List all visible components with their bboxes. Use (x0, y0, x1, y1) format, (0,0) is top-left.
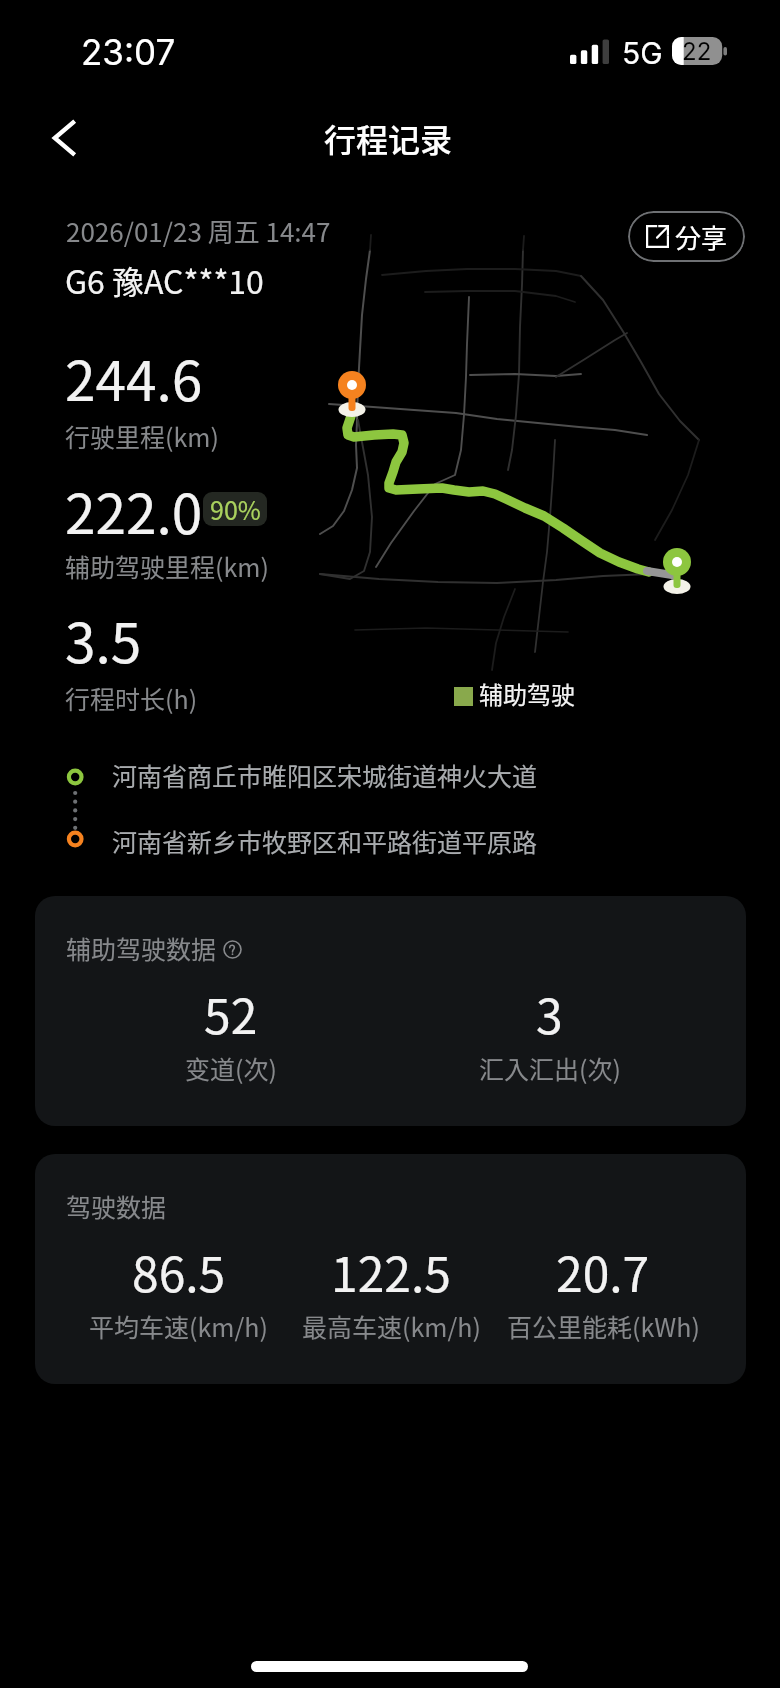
button[interactable]: Back (30, 105, 96, 171)
staticText: 行驶里程(km) (65, 418, 219, 454)
staticText: 3 (536, 978, 563, 1048)
staticText: 变道(次) (185, 1050, 277, 1086)
staticText: 122.5 (331, 1236, 451, 1306)
staticText: 驾驶数据 (66, 1188, 167, 1224)
staticText: 2026/01/23 周五 14:47 (66, 212, 331, 250)
staticText: 行程时长(h) (65, 680, 198, 716)
button[interactable]: 分享 (628, 211, 745, 262)
staticText: 86.5 (132, 1236, 226, 1306)
staticText: 分享 (675, 218, 728, 256)
staticText: 百公里能耗(kWh) (507, 1308, 700, 1344)
staticText: 河南省商丘市睢阳区宋城街道神火大道 (112, 757, 538, 793)
staticText: 河南省新乡市牧野区和平路街道平原路 (112, 823, 538, 859)
staticText: 辅助驾驶 (479, 676, 575, 711)
staticText: 平均车速(km/h) (89, 1308, 268, 1344)
staticText: 辅助驾驶里程(km) (65, 548, 269, 584)
button[interactable]: 辅助驾驶数据 (35, 896, 746, 1126)
staticText: 23:07 (81, 31, 176, 73)
staticText: 90% (210, 492, 261, 525)
staticText: 行程记录 (324, 115, 453, 161)
staticText: 汇入汇出(次) (479, 1050, 621, 1086)
staticText: 52 (204, 978, 258, 1048)
staticText: 辅助驾驶数据 (66, 930, 217, 966)
staticText: 222.0 (65, 470, 203, 550)
staticText: G6 豫AC***10 (65, 257, 264, 303)
staticText: 3.5 (65, 599, 142, 679)
staticText: 20.7 (556, 1236, 650, 1306)
staticText: 5G (622, 35, 663, 71)
staticText: 最高车速(km/h) (302, 1308, 481, 1344)
staticText: 22 (682, 37, 712, 65)
staticText: 244.6 (65, 337, 203, 417)
button[interactable]: 驾驶数据 (35, 1154, 746, 1384)
